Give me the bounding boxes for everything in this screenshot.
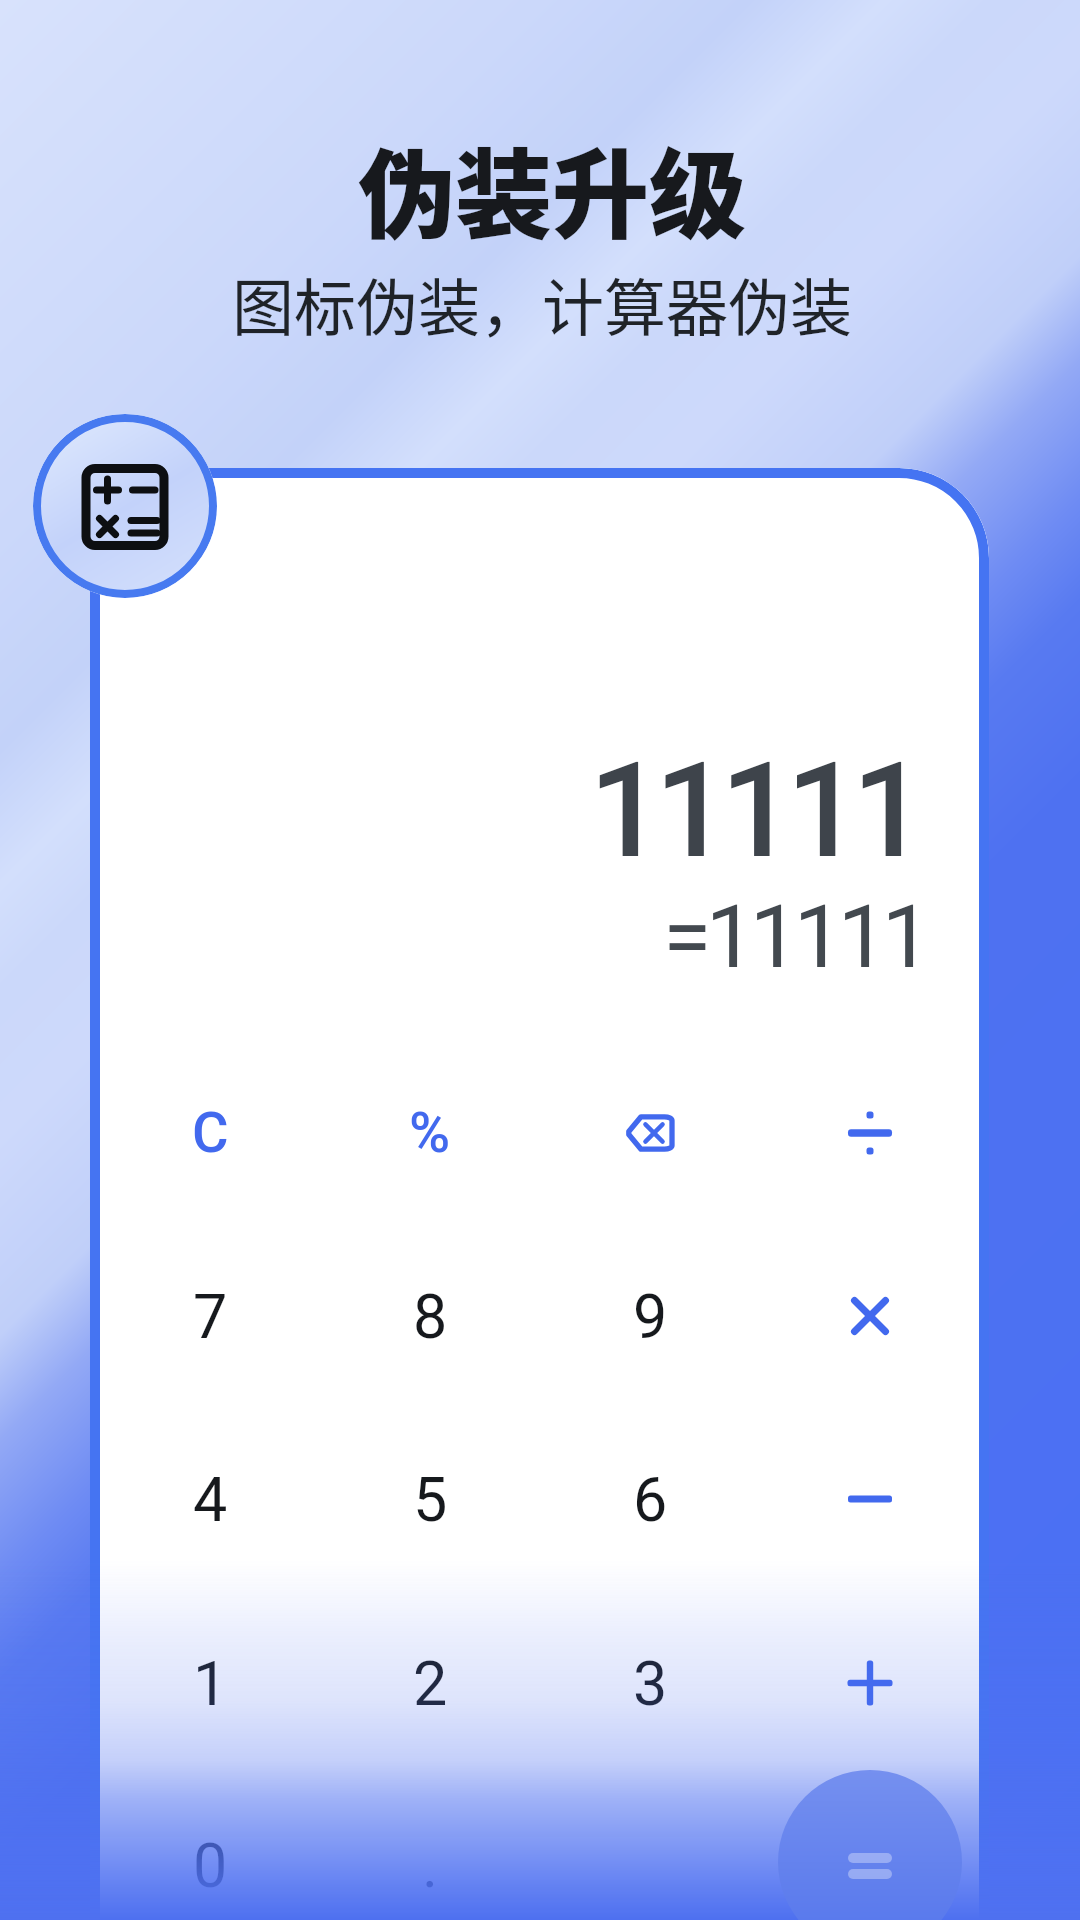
staticText: 11111 bbox=[589, 734, 918, 888]
button[interactable] bbox=[760, 1241, 980, 1391]
staticText: 2 bbox=[413, 1648, 448, 1719]
button[interactable]: 1 bbox=[100, 1608, 320, 1758]
staticText: 3 bbox=[633, 1648, 668, 1719]
button[interactable]: C bbox=[100, 1058, 320, 1208]
button[interactable]: 2 bbox=[320, 1608, 540, 1758]
staticText: 6 bbox=[633, 1464, 668, 1535]
button[interactable]: 4 bbox=[100, 1424, 320, 1574]
button[interactable] bbox=[778, 1770, 962, 1920]
button[interactable]: % bbox=[320, 1058, 540, 1208]
staticText: 图标伪装，计算器伪装 bbox=[232, 259, 853, 349]
button[interactable] bbox=[760, 1058, 980, 1208]
staticText: 5 bbox=[413, 1464, 448, 1535]
button[interactable]: 7 bbox=[100, 1241, 320, 1391]
staticText: 9 bbox=[633, 1281, 668, 1352]
button[interactable]: 3 bbox=[540, 1608, 760, 1758]
staticText: 1 bbox=[193, 1648, 228, 1719]
staticText: 8 bbox=[413, 1281, 448, 1352]
staticText: 0 bbox=[193, 1830, 228, 1901]
button[interactable]: 6 bbox=[540, 1424, 760, 1574]
staticText: 7 bbox=[193, 1281, 228, 1352]
button[interactable] bbox=[540, 1058, 760, 1208]
staticText: 4 bbox=[193, 1464, 228, 1535]
button[interactable] bbox=[760, 1424, 980, 1574]
button[interactable]: 5 bbox=[320, 1424, 540, 1574]
button[interactable] bbox=[760, 1790, 980, 1920]
button[interactable]: 0 bbox=[100, 1790, 320, 1920]
button[interactable]: . bbox=[320, 1790, 540, 1920]
button[interactable] bbox=[540, 1790, 760, 1920]
button[interactable]: 8 bbox=[320, 1241, 540, 1391]
button[interactable] bbox=[760, 1608, 980, 1758]
staticText: . bbox=[422, 1830, 439, 1901]
button[interactable]: 9 bbox=[540, 1241, 760, 1391]
staticText: C bbox=[192, 1100, 229, 1166]
staticText: 伪装升级 bbox=[358, 117, 746, 257]
staticText: =11111 bbox=[663, 885, 926, 988]
staticText: % bbox=[409, 1100, 451, 1166]
